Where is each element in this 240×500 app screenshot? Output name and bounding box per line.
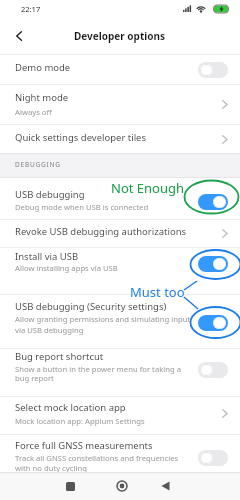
staticText: Must too [130,283,185,301]
staticText: bug report [15,373,54,383]
staticText: with no duty cycling [15,463,87,473]
button[interactable]: Select mock location app [0,397,240,434]
staticText: 22:17 [21,4,41,14]
staticText: Developer options [74,29,166,43]
staticText: Select mock location app [15,401,126,414]
staticText: Quick settings developer tiles [15,131,147,144]
staticText: Track all GNSS constellations and freque… [15,453,179,463]
staticText: Bug report shortcut [15,350,104,363]
button[interactable] [198,315,228,331]
staticText: Revoke USB debugging authorizations [15,225,187,238]
staticText: via USB debugging [15,325,84,335]
button[interactable] [198,362,228,378]
button[interactable] [198,194,228,210]
staticText: Always off [15,107,52,117]
staticText: Allow installing apps via USB [15,263,118,273]
staticText: Not Enough [111,179,185,197]
staticText: USB debugging (Security settings) [15,300,167,313]
staticText: Force full GNSS measurements [15,439,153,452]
button[interactable]: Force full GNSS measurements [0,435,240,472]
button[interactable] [116,480,128,492]
staticText: Install via USB [15,250,79,263]
button[interactable] [16,31,22,41]
staticText: Debug mode when USB is connected [15,202,149,212]
button[interactable] [198,62,228,78]
button[interactable] [198,450,228,466]
button[interactable] [161,481,170,491]
button[interactable]: Night mode [0,85,240,124]
button[interactable]: Demo mode [0,55,240,84]
staticText: DEBUGGING [15,160,61,169]
button[interactable]: Bug report shortcut [0,349,240,396]
button[interactable] [66,482,75,491]
button[interactable]: USB debugging [0,178,240,219]
staticText: Night mode [15,91,69,104]
button[interactable] [198,256,228,272]
button[interactable]: Install via USB [0,248,240,294]
staticText: Mock location app: Appium Settings [15,416,145,426]
staticText: Show a button in the power menu for taki… [15,364,182,374]
staticText: Allow granting permissions and simulatin… [15,314,191,324]
staticText: Demo mode [15,61,71,74]
staticText: USB debugging [15,188,85,201]
button[interactable]: USB debugging (Security settings) [0,295,240,348]
button[interactable]: Quick settings developer tiles [0,125,240,153]
button[interactable]: Revoke USB debugging authorizations [0,220,240,247]
